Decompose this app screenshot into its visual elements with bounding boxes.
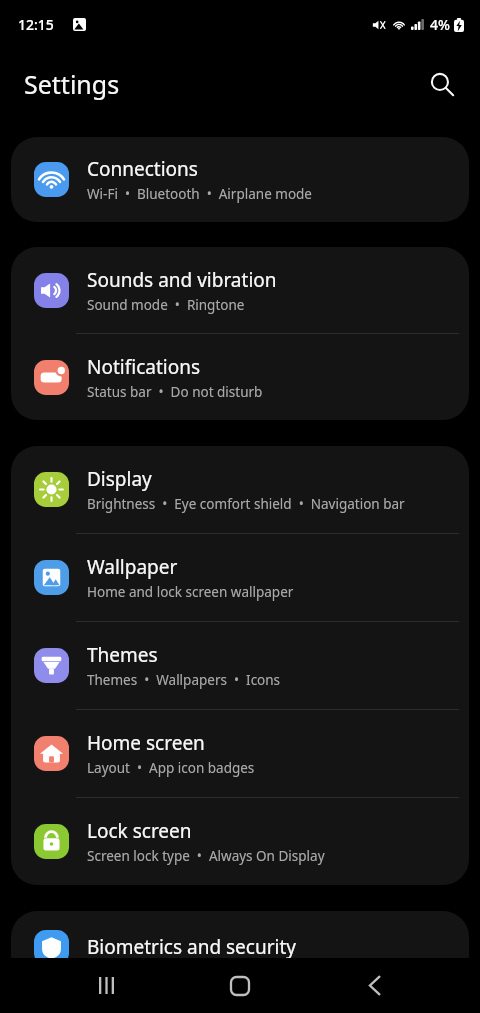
- staticText: Connections: [87, 156, 198, 182]
- staticText: Wi-Fi • Bluetooth • Airplane mode: [87, 185, 312, 203]
- staticText: Home screen: [87, 730, 205, 756]
- staticText: Biometrics and security: [87, 934, 297, 960]
- button[interactable]: Notifications: [11, 334, 469, 420]
- staticText: Brightness • Eye comfort shield • Naviga…: [87, 495, 405, 513]
- button[interactable]: Sounds and vibration: [11, 247, 469, 333]
- staticText: Lock screen: [87, 818, 192, 844]
- button[interactable]: Biometrics and security: [11, 911, 469, 983]
- staticText: Home and lock screen wallpaper: [87, 583, 294, 601]
- staticText: Notifications: [87, 354, 201, 380]
- staticText: Display: [87, 466, 152, 492]
- staticText: Themes: [87, 642, 158, 668]
- staticText: Status bar • Do not disturb: [87, 383, 263, 401]
- button[interactable]: Recent apps: [78, 958, 134, 1013]
- button[interactable]: Themes: [11, 622, 469, 709]
- staticText: Settings: [24, 67, 120, 101]
- button[interactable]: Home screen: [11, 710, 469, 797]
- button[interactable]: Connections: [11, 137, 469, 222]
- staticText: Sounds and vibration: [87, 267, 277, 293]
- button[interactable]: Wallpaper: [11, 534, 469, 621]
- staticText: Layout • App icon badges: [87, 759, 255, 777]
- staticText: Themes • Wallpapers • Icons: [87, 671, 281, 689]
- staticText: Wallpaper: [87, 554, 178, 580]
- staticText: 12:15: [18, 15, 54, 34]
- button[interactable]: Display: [11, 446, 469, 533]
- button[interactable]: Search: [418, 60, 466, 108]
- button[interactable]: Home: [212, 958, 268, 1013]
- button[interactable]: Back: [346, 958, 402, 1013]
- staticText: 4%: [430, 15, 450, 34]
- staticText: Sound mode • Ringtone: [87, 296, 245, 314]
- staticText: Screen lock type • Always On Display: [87, 847, 325, 865]
- button[interactable]: Lock screen: [11, 798, 469, 885]
